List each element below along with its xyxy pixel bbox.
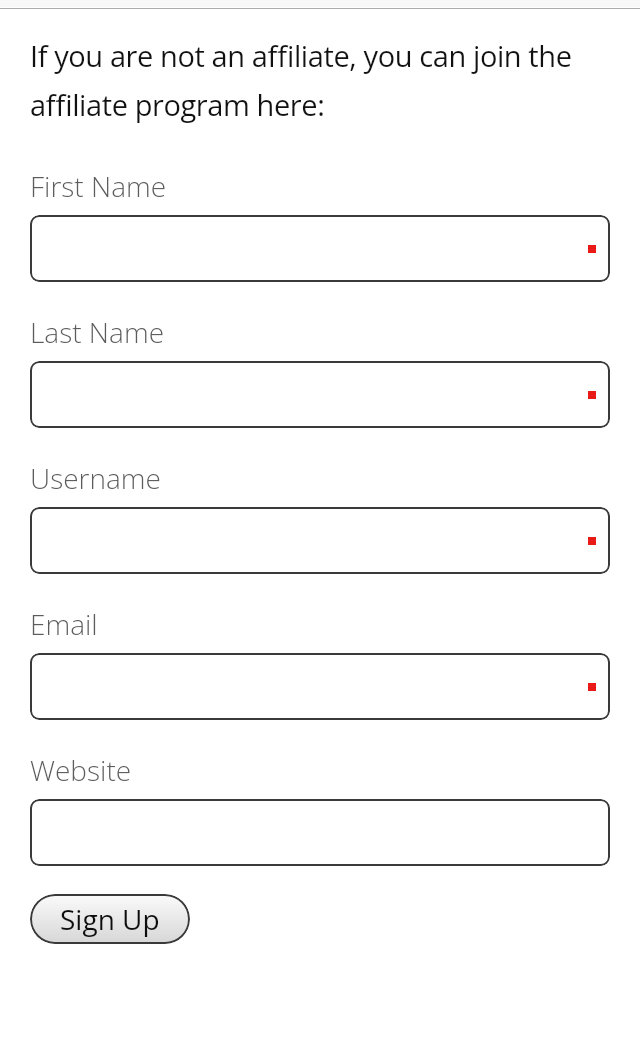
staticText: Username (30, 459, 161, 497)
staticText: Sign Up (60, 900, 160, 938)
button[interactable]: Website input field (30, 799, 610, 866)
button[interactable]: Email input field (30, 653, 610, 720)
button[interactable]: Last Name input field (30, 361, 610, 428)
button[interactable]: Username input field (30, 507, 610, 574)
staticText: Email (30, 605, 98, 643)
staticText: Last Name (30, 313, 165, 351)
button[interactable]: Sign Up (30, 894, 190, 944)
staticText: Website (30, 751, 132, 789)
staticText: First Name (30, 167, 167, 205)
staticText: If you are not an affiliate, you can joi… (30, 36, 610, 125)
button[interactable]: First Name input field (30, 215, 610, 282)
